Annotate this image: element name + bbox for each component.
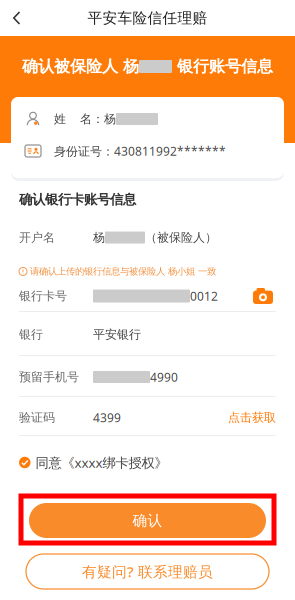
staticText: 姓 <box>54 112 66 126</box>
staticText: 预留手机号 <box>19 370 79 384</box>
staticText: 平安银行 <box>93 327 141 342</box>
staticText: 请确认上传的银行信息与被保险人 杨小姐 一致 <box>30 266 216 277</box>
staticText: 确认被保险人 <box>22 57 123 76</box>
button[interactable]: 同意《xxxx绑卡授权》 <box>19 436 276 489</box>
button[interactable]: Scan bank card <box>253 288 276 304</box>
staticText: 4990 <box>150 369 178 385</box>
button[interactable]: 确认 <box>21 496 274 543</box>
staticText: 身份证号：430811992******* <box>54 143 226 159</box>
staticText: 同意《xxxx绑卡授权》 <box>35 454 167 471</box>
staticText: 开户名 <box>19 230 55 245</box>
staticText: 平安车险信任理赔 <box>87 9 207 27</box>
staticText: 银行卡号 <box>19 289 67 303</box>
staticText: 杨 <box>93 230 105 245</box>
staticText: 确认 <box>132 511 162 529</box>
staticText: 银行 <box>19 327 43 342</box>
staticText: 4399 <box>93 409 121 425</box>
staticText: （被保险人） <box>145 230 217 245</box>
button[interactable]: 点击获取 <box>228 410 276 425</box>
staticText: 验证码 <box>19 410 55 425</box>
button[interactable]: 有疑问? 联系理赔员 <box>26 554 269 589</box>
staticText: 0012 <box>190 288 218 304</box>
staticText: 名：杨 <box>80 112 116 126</box>
staticText: 有疑问? 联系理赔员 <box>82 562 213 581</box>
button[interactable]: Back <box>0 0 37 36</box>
staticText: 点击获取 <box>228 410 276 425</box>
staticText: 确认银行卡账号信息 <box>19 191 136 208</box>
staticText: 银行账号信息 <box>172 57 273 76</box>
staticText: 杨 <box>123 57 139 76</box>
